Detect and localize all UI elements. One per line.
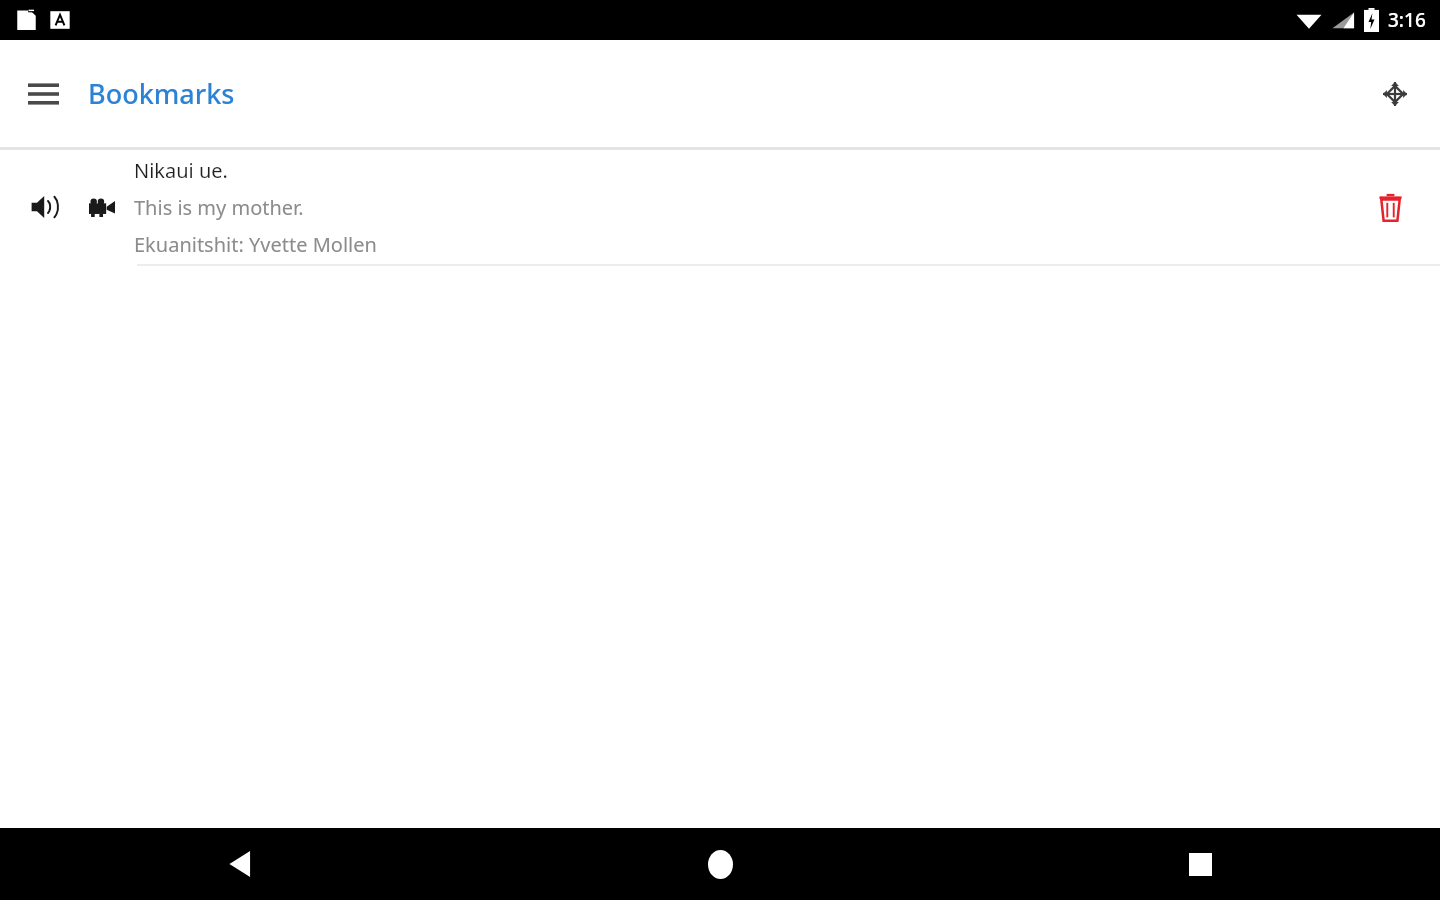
button[interactable]: Play audio bbox=[0, 150, 1440, 264]
button[interactable]: Delete bookmark bbox=[1364, 181, 1416, 233]
staticText: Nikaui ue. bbox=[134, 157, 228, 184]
button[interactable]: Open navigation menu bbox=[10, 61, 76, 127]
staticText: 3:16 bbox=[1388, 7, 1426, 33]
staticText: Bookmarks bbox=[88, 75, 235, 112]
staticText: Ekuanitshit: Yvette Mollen bbox=[134, 231, 377, 258]
button[interactable]: Play audio bbox=[22, 183, 70, 231]
button[interactable]: Recent apps bbox=[960, 828, 1440, 900]
staticText: This is my mother. bbox=[134, 194, 304, 221]
button[interactable]: Move bbox=[1364, 63, 1426, 125]
button[interactable]: Home bbox=[480, 828, 960, 900]
button[interactable]: Back bbox=[0, 828, 480, 900]
button[interactable]: Play video bbox=[80, 185, 124, 229]
